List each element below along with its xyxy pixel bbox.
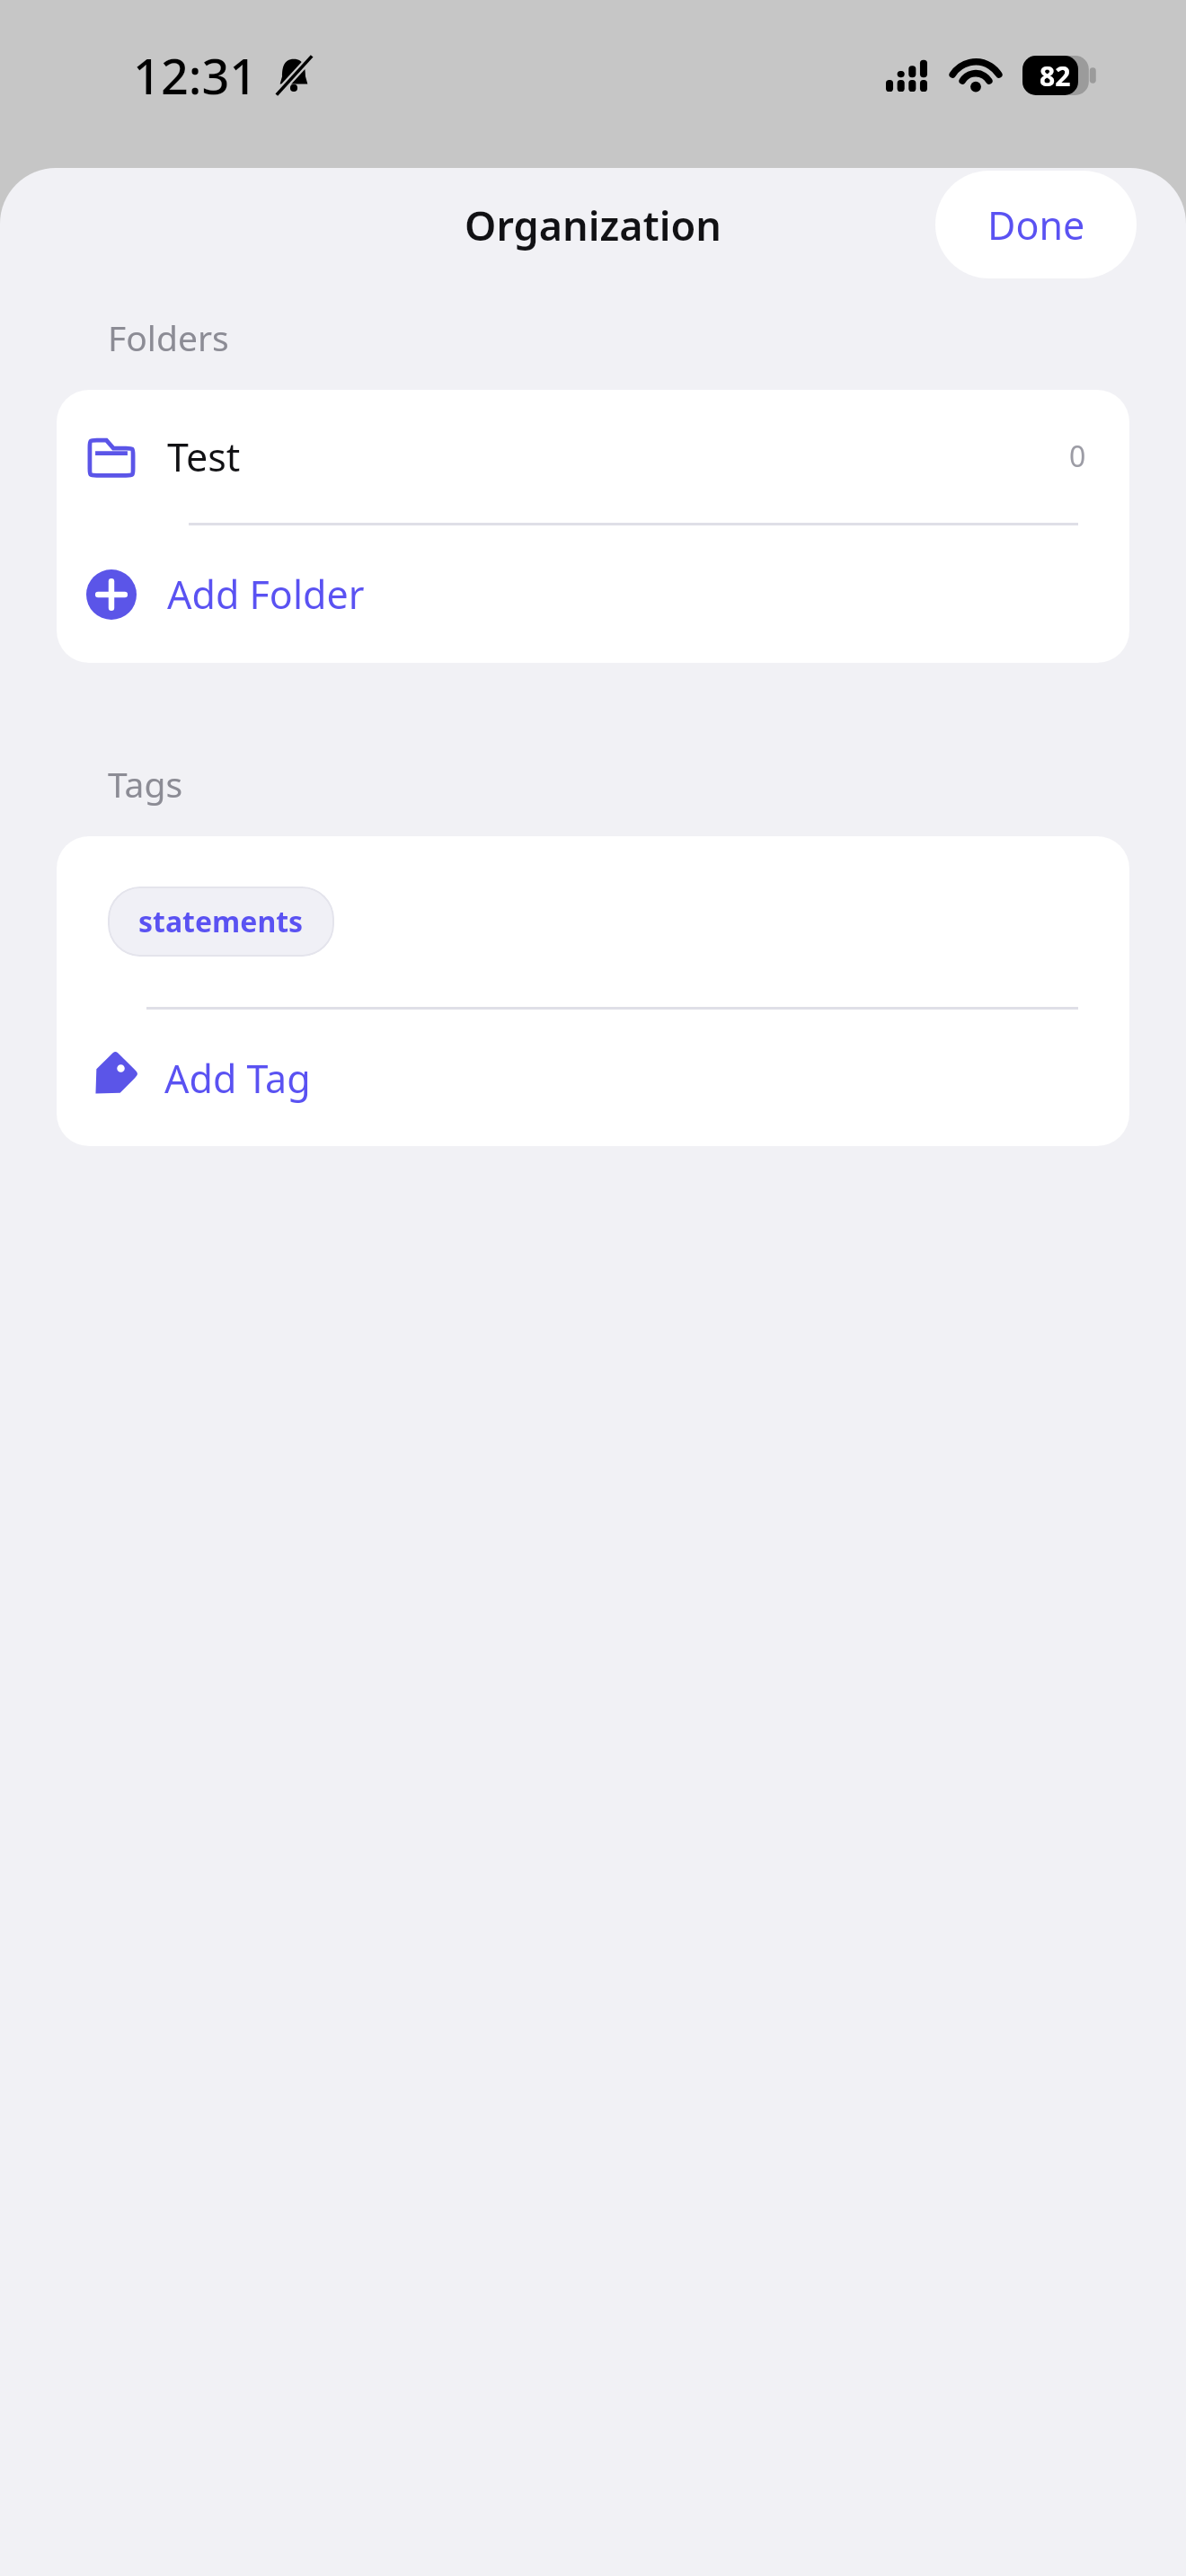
staticText: Add Folder — [167, 568, 365, 621]
button[interactable]: Add Folder — [57, 525, 1129, 663]
button[interactable]: Done — [935, 171, 1137, 278]
button[interactable]: statements — [108, 887, 334, 957]
staticText: 0 — [1069, 437, 1086, 476]
staticText: Organization — [465, 198, 722, 252]
staticText: Done — [987, 198, 1085, 251]
staticText: 12:31 — [133, 42, 258, 109]
other: Tag — [72, 1038, 151, 1117]
staticText: statements — [138, 902, 304, 941]
staticText: Add Tag — [164, 1052, 311, 1105]
other: Folder — [86, 431, 137, 481]
staticText: Tags — [108, 760, 183, 807]
button[interactable]: Tag — [57, 1010, 1129, 1146]
staticText: 82 — [1040, 57, 1071, 94]
staticText: Test — [167, 430, 241, 483]
button[interactable]: Folder — [57, 390, 1129, 523]
staticText: Folders — [108, 313, 229, 361]
